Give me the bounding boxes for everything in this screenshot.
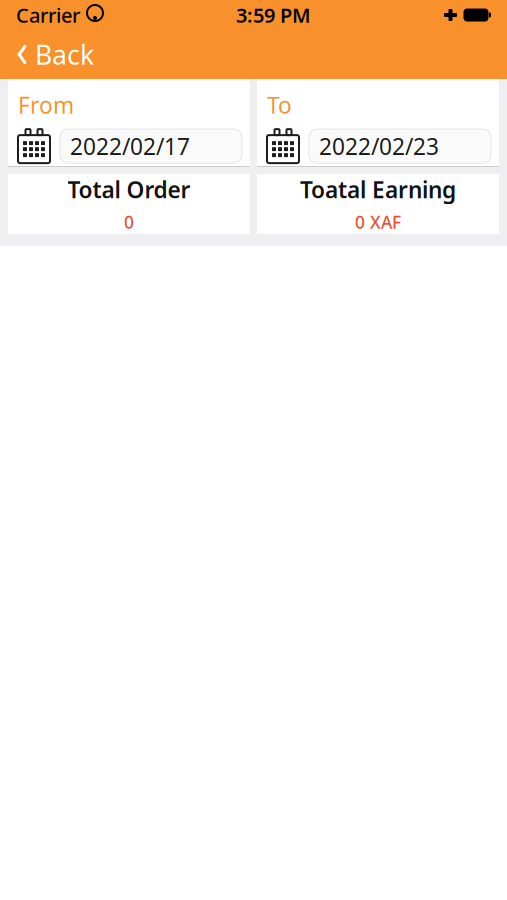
staticText: 0 [124,210,134,233]
staticText: 2022/02/23 [319,131,439,161]
staticText: 0 XAF [355,210,401,233]
staticText: To [267,90,292,120]
staticText: Toatal Earning [300,174,456,204]
staticText: Back [35,37,94,72]
staticText: Carrier [16,2,80,28]
button[interactable]: 2022/02/17 [60,129,242,163]
staticText: From [18,90,74,120]
button[interactable]: 2022/02/23 [309,129,491,163]
staticText: 3:59 PM [236,2,311,28]
staticText: Total Order [67,174,190,204]
button[interactable]: Back [0,30,110,79]
staticText: 2022/02/17 [70,131,190,161]
